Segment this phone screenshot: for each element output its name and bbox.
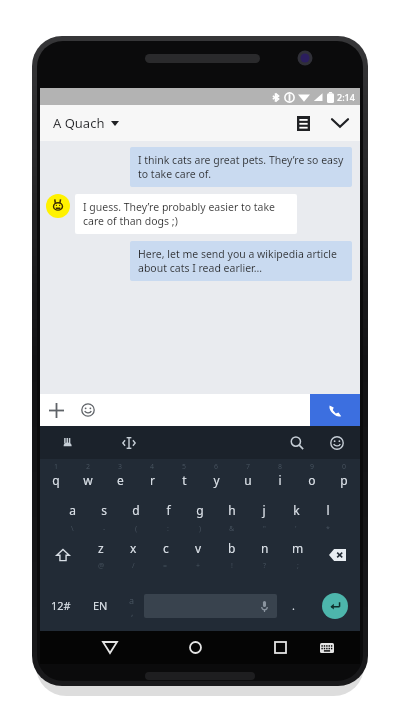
button[interactable]: k	[280, 502, 312, 530]
button[interactable]: Handwriting	[54, 430, 80, 456]
staticText: k	[293, 502, 300, 518]
button[interactable]: Conversation list	[286, 106, 320, 140]
other: Avatar	[46, 194, 70, 218]
staticText: *	[326, 524, 330, 534]
button[interactable]: b	[215, 540, 248, 570]
button[interactable]: e	[104, 472, 136, 500]
staticText: v	[195, 540, 202, 556]
staticText: +	[196, 561, 201, 571]
staticText: 6	[214, 462, 219, 472]
button[interactable]: .	[277, 580, 309, 631]
staticText: "	[263, 524, 266, 534]
staticText: l	[326, 502, 330, 518]
staticText: 8	[278, 462, 283, 472]
staticText: 2:14	[337, 91, 355, 103]
button[interactable]: Hide keyboard	[308, 631, 345, 664]
button[interactable]: r	[136, 472, 168, 500]
button[interactable]: z	[85, 540, 117, 570]
button[interactable]: Back	[91, 631, 129, 664]
button[interactable]: s	[88, 502, 120, 530]
button[interactable]: h	[216, 502, 248, 530]
staticText: !	[231, 561, 233, 571]
staticText: 9	[310, 462, 315, 472]
staticText: '	[295, 524, 297, 534]
button[interactable]: Backspace	[314, 540, 360, 570]
button[interactable]: Recents	[262, 631, 299, 664]
button[interactable]: x	[117, 540, 149, 570]
button[interactable]: i	[264, 472, 296, 500]
staticText: /	[132, 561, 135, 571]
staticText: 2	[86, 462, 91, 472]
button[interactable]: Shift	[40, 540, 85, 570]
staticText: 1	[54, 462, 59, 472]
button[interactable]: q	[40, 472, 72, 500]
staticText: (	[135, 524, 138, 534]
button[interactable]: 12#	[40, 580, 81, 631]
button[interactable]: A Quach	[40, 108, 127, 138]
staticText: o	[308, 472, 316, 488]
staticText: 0	[342, 462, 347, 472]
button[interactable]: Home	[177, 631, 214, 664]
button[interactable]: Emoji	[72, 394, 104, 426]
button[interactable]: Cursor control	[116, 430, 142, 456]
staticText: g	[196, 502, 204, 518]
staticText: m	[292, 540, 304, 556]
button[interactable]: l	[312, 502, 344, 530]
staticText: :	[167, 524, 169, 534]
staticText: ;	[297, 561, 299, 571]
staticText: n	[261, 540, 269, 556]
button[interactable]: a	[56, 502, 88, 530]
button[interactable]: u	[232, 472, 264, 500]
button[interactable]: o	[296, 472, 328, 500]
staticText: A Quach	[53, 114, 105, 132]
staticText: @	[98, 561, 105, 571]
staticText: j	[262, 502, 266, 518]
staticText: h	[228, 502, 236, 518]
staticText: ,	[131, 606, 134, 618]
button[interactable]: Here, let me send you a wikipedia articl…	[130, 241, 352, 281]
button[interactable]: I think cats are great pets. They’re so …	[130, 147, 352, 187]
staticText: e	[117, 472, 124, 488]
staticText: a	[129, 594, 135, 606]
button[interactable]: g	[184, 502, 216, 530]
staticText: i	[278, 472, 282, 488]
button[interactable]: p	[328, 472, 360, 500]
staticText: &	[229, 524, 235, 534]
staticText: )	[199, 524, 202, 534]
staticText: w	[83, 472, 93, 488]
button[interactable]: m	[281, 540, 314, 570]
staticText: a	[69, 502, 76, 518]
staticText: -	[103, 524, 106, 534]
button[interactable]: Add attachment	[40, 394, 72, 426]
button[interactable]: Emoji keyboard	[322, 428, 352, 458]
button[interactable]: Space	[144, 594, 277, 618]
button[interactable]: n	[248, 540, 281, 570]
staticText: f	[166, 502, 171, 518]
staticText: EN	[93, 598, 108, 613]
staticText: 12#	[51, 598, 71, 613]
button[interactable]: w	[72, 472, 104, 500]
staticText: z	[98, 540, 104, 556]
button[interactable]: Collapse	[320, 105, 360, 141]
button[interactable]: d	[120, 502, 152, 530]
button[interactable]: v	[182, 540, 215, 570]
staticText: ?	[263, 561, 267, 571]
button[interactable]: y	[200, 472, 232, 500]
button[interactable]: Search	[282, 428, 312, 458]
button[interactable]: c	[149, 540, 182, 570]
staticText: \	[71, 524, 74, 534]
staticText: .	[292, 598, 295, 613]
button[interactable]: t	[168, 472, 200, 500]
button[interactable]: Call	[310, 394, 360, 426]
staticText: x	[130, 540, 137, 556]
staticText: r	[150, 472, 155, 488]
button[interactable]: j	[248, 502, 280, 530]
staticText: I think cats are great pets. They’re so …	[138, 153, 344, 181]
staticText: q	[52, 472, 60, 488]
button[interactable]: I guess. They’re probably easier to take…	[75, 194, 297, 234]
button[interactable]: Enter	[322, 593, 348, 619]
button[interactable]: EN	[81, 580, 119, 631]
staticText: 3	[118, 462, 123, 472]
button[interactable]: f	[152, 502, 184, 530]
